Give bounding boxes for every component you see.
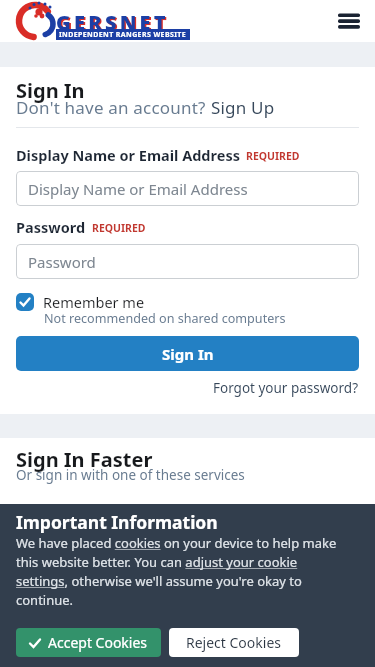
staticText: INDEPENDENT RANGERS WEBSITE	[59, 30, 187, 40]
staticText: this website better. You can adjust your…	[16, 553, 298, 571]
staticText: Sign In	[162, 344, 214, 364]
button[interactable]: Display Name or Email Address	[16, 171, 359, 206]
staticText: REQUIRED	[246, 149, 300, 163]
button[interactable]: Sign In	[16, 336, 359, 371]
staticText: settings, otherwise we'll assume you're …	[16, 572, 302, 590]
staticText: We have placed cookies on your device to…	[16, 534, 337, 552]
button[interactable]: Accept Cookies	[16, 628, 161, 657]
staticText: Sign In Faster	[16, 446, 153, 473]
staticText: GERSNET	[56, 9, 169, 36]
staticText: Remember me	[43, 292, 145, 312]
staticText: Important Information	[16, 510, 218, 534]
button[interactable]: Remember me	[16, 292, 145, 312]
staticText: Don't have an account?	[16, 96, 211, 119]
button[interactable]: Sign Up	[211, 96, 275, 119]
staticText: continue.	[16, 591, 74, 609]
button[interactable]: Password	[16, 244, 359, 279]
staticText: Sign In	[16, 77, 85, 104]
staticText: Reject Cookies	[186, 633, 282, 652]
staticText: Password	[16, 217, 86, 237]
staticText: Or sign in with one of these services	[16, 466, 245, 484]
button[interactable]: Reject Cookies	[169, 628, 299, 657]
staticText: Password	[28, 252, 96, 272]
staticText: Display Name or Email Address	[28, 179, 248, 199]
button[interactable]	[337, 13, 361, 31]
staticText: Not recommended on shared computers	[44, 310, 286, 327]
button[interactable]: Forgot your password?	[213, 379, 359, 397]
staticText: REQUIRED	[92, 221, 146, 235]
staticText: Display Name or Email Address	[16, 145, 240, 165]
staticText: Accept Cookies	[48, 633, 148, 652]
